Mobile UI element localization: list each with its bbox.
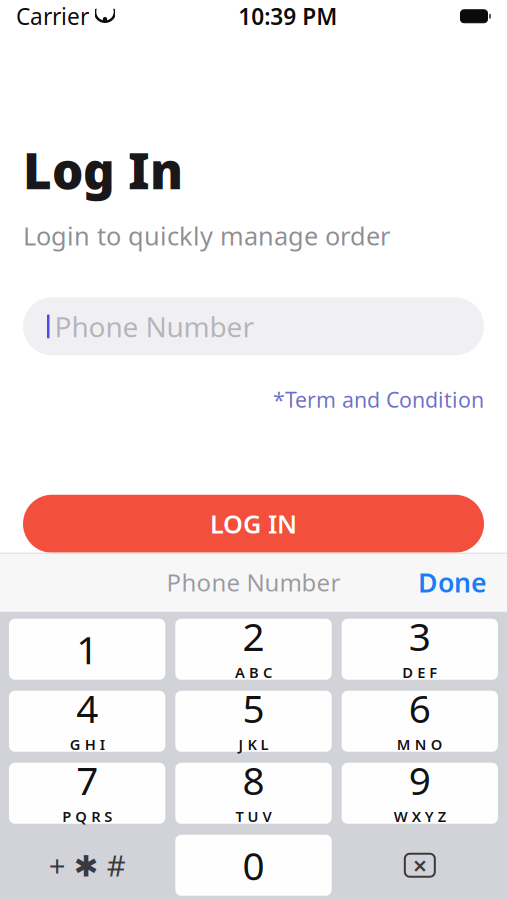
staticText: Phone Number [166,566,340,598]
staticText: T U V [235,807,271,826]
staticText: M N O [397,735,443,754]
staticText: Log In [23,137,183,203]
staticText: 2 [242,610,264,662]
staticText: A B C [235,663,272,682]
staticText: 5 [242,682,264,734]
staticText: 6 [409,682,431,734]
staticText: D E F [402,663,437,682]
staticText: LOG IN [210,507,297,540]
staticText: 4 [76,682,98,734]
staticText: Carrier [16,1,89,31]
staticText: 3 [409,610,431,662]
staticText: *Term and Condition [273,385,484,414]
staticText: 1 [76,624,98,675]
staticText: 9 [409,754,431,806]
button[interactable]: 3 [342,619,498,680]
button[interactable]: 0 [175,835,332,896]
button[interactable]: 9 [342,763,498,824]
button[interactable]: LOG IN [23,495,484,553]
button[interactable]: 7 [9,763,165,824]
staticText: Login to quickly manage order [23,219,390,252]
button[interactable]: 6 [342,691,498,752]
staticText: + ✱ # [49,846,126,885]
staticText: 0 [242,840,264,891]
staticText: P Q R S [62,807,112,826]
button[interactable]: 1 [9,619,165,680]
staticText: W X Y Z [394,807,446,826]
button[interactable]: 4 [9,691,165,752]
staticText: Done [418,564,487,600]
staticText: × [413,848,427,882]
staticText: G H I [70,735,105,754]
button[interactable]: 2 [175,619,332,680]
button[interactable]: 5 [175,691,332,752]
staticText: J K L [238,735,268,754]
staticText: 8 [242,754,264,806]
staticText: 7 [76,754,98,806]
button[interactable]: Done [418,564,487,600]
button[interactable]: Delete [342,835,498,896]
button[interactable]: 8 [175,763,332,824]
button[interactable]: *Term and Condition [273,385,484,414]
staticText: 10:39 PM [238,1,337,31]
staticText: Phone Number [54,308,254,345]
button[interactable]: Symbols [9,835,165,896]
